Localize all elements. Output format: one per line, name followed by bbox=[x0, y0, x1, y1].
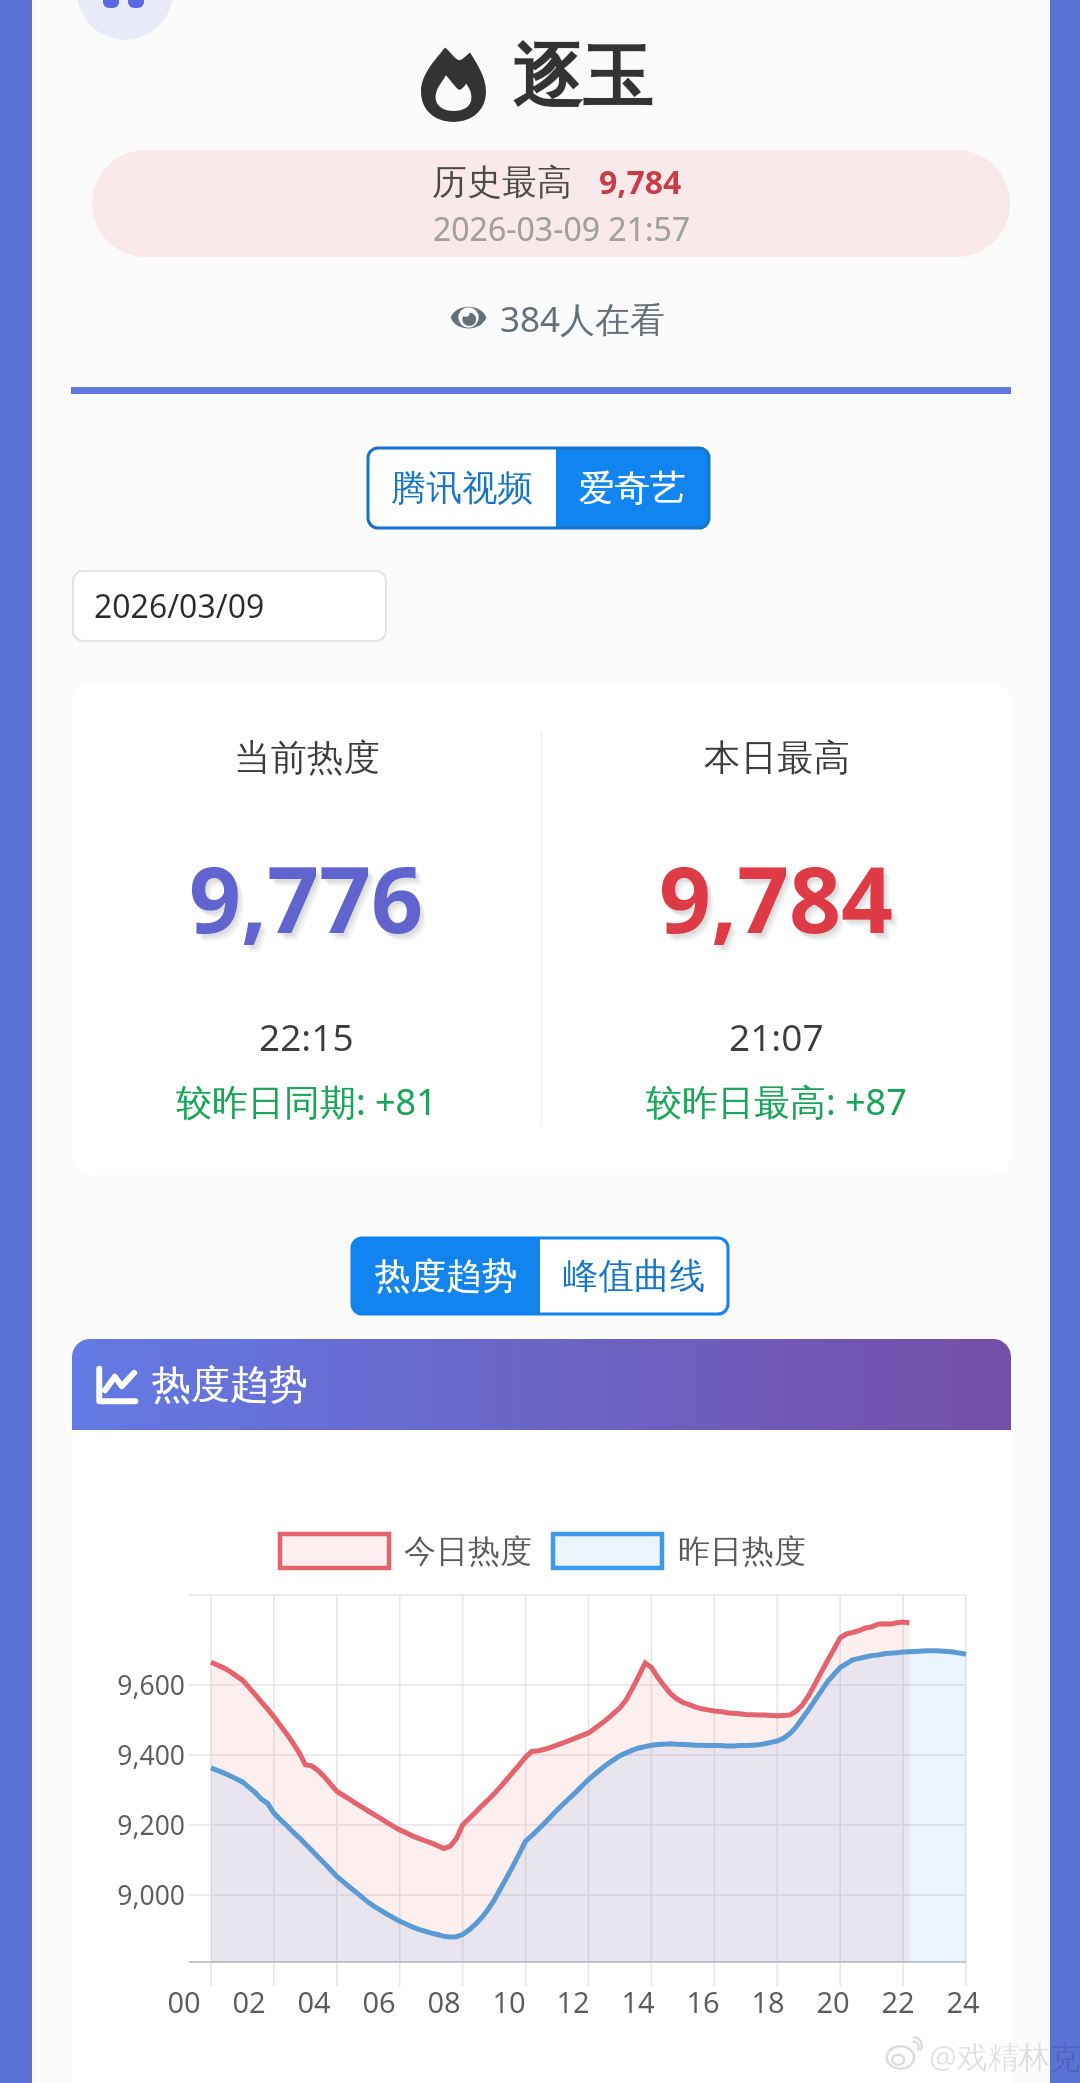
staticText: 9,776 bbox=[191, 839, 426, 963]
button[interactable]: 峰值曲线 bbox=[540, 1238, 728, 1314]
staticText: 2026/03/09 bbox=[94, 584, 265, 628]
staticText: 21:07 bbox=[729, 1011, 824, 1061]
staticText: 昨日热度 bbox=[678, 1531, 806, 1571]
staticText: 9,600 bbox=[65, 1667, 185, 1703]
staticText: 今日热度 bbox=[404, 1531, 532, 1571]
button[interactable]: 爱奇艺 bbox=[556, 448, 709, 528]
staticText: 热度趋势 bbox=[152, 1360, 308, 1409]
staticText: 24 bbox=[918, 1982, 1008, 2021]
button[interactable] bbox=[92, 150, 1010, 257]
button[interactable]: 腾讯视频 bbox=[368, 448, 556, 528]
staticText: 9,776 bbox=[189, 836, 424, 960]
staticText: 9,784 bbox=[659, 836, 894, 960]
staticText: 9,784 bbox=[661, 839, 896, 963]
staticText: 逐玉 bbox=[512, 34, 652, 122]
button[interactable]: 本日最高 bbox=[542, 682, 1011, 1175]
button[interactable]: Pause bbox=[77, 0, 173, 40]
staticText: 9,784 bbox=[665, 843, 900, 967]
button[interactable]: 热度趋势 bbox=[352, 1238, 540, 1314]
staticText: 22 bbox=[853, 1982, 943, 2021]
staticText: 峰值曲线 bbox=[563, 1254, 705, 1299]
staticText: 2026-03-09 21:57 bbox=[433, 207, 691, 251]
staticText: 14 bbox=[593, 1982, 683, 2021]
staticText: 腾讯视频 bbox=[391, 466, 533, 511]
staticText: 18 bbox=[723, 1982, 813, 2021]
staticText: 较昨日最高: +87 bbox=[646, 1077, 907, 1126]
staticText: 10 bbox=[464, 1982, 554, 2021]
button[interactable]: 当前热度 bbox=[72, 682, 541, 1175]
staticText: 384人在看 bbox=[500, 295, 666, 343]
staticText: 9,000 bbox=[65, 1877, 185, 1913]
staticText: 08 bbox=[399, 1982, 489, 2021]
staticText: 20 bbox=[788, 1982, 878, 2021]
button[interactable]: 2026/03/09 bbox=[73, 571, 386, 641]
staticText: 爱奇艺 bbox=[579, 466, 686, 511]
staticText: 06 bbox=[334, 1982, 424, 2021]
staticText: 当前热度 bbox=[234, 735, 380, 781]
staticText: 00 bbox=[139, 1982, 229, 2021]
button[interactable]: 热度趋势 bbox=[72, 1339, 1011, 1430]
staticText: 9,784 bbox=[663, 841, 898, 965]
staticText: 9,400 bbox=[65, 1737, 185, 1773]
staticText: 9,776 bbox=[193, 841, 428, 965]
staticText: 22:15 bbox=[259, 1011, 354, 1061]
staticText: 历史最高 bbox=[432, 160, 572, 204]
staticText: 9,776 bbox=[195, 843, 430, 967]
staticText: 9,784 bbox=[599, 160, 682, 204]
staticText: 较昨日同期: +81 bbox=[176, 1077, 437, 1126]
staticText: 16 bbox=[658, 1982, 748, 2021]
staticText: 本日最高 bbox=[704, 735, 850, 781]
staticText: 9,200 bbox=[65, 1807, 185, 1843]
staticText: 04 bbox=[269, 1982, 359, 2021]
staticText: @戏精林克 bbox=[929, 2035, 1080, 2077]
staticText: 02 bbox=[204, 1982, 294, 2021]
staticText: 12 bbox=[528, 1982, 618, 2021]
staticText: 热度趋势 bbox=[375, 1254, 517, 1299]
